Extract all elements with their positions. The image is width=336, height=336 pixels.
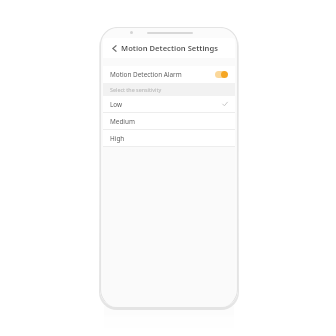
staticText: Medium — [110, 117, 135, 126]
staticText: Select the sensitivity — [110, 86, 162, 93]
staticText: Motion Detection Settings — [121, 43, 218, 53]
button[interactable]: High — [103, 130, 235, 146]
button[interactable]: Back — [106, 40, 122, 56]
staticText: Motion Detection Alarm — [110, 70, 182, 79]
button[interactable]: Low — [103, 96, 235, 112]
staticText: Low — [110, 100, 123, 109]
button[interactable]: Motion Detection Alarm — [103, 66, 235, 83]
staticText: High — [110, 134, 125, 143]
button[interactable]: Medium — [103, 113, 235, 129]
